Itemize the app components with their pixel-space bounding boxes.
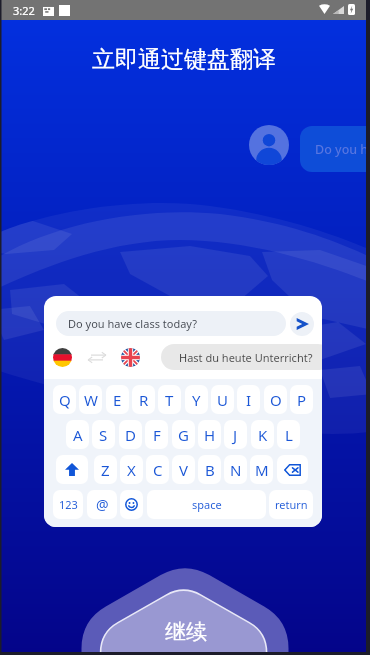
staticText: V [179,460,189,480]
staticText: I [246,390,252,410]
staticText: O [270,390,282,410]
button[interactable]: Shift [56,455,88,484]
button[interactable]: Z [94,455,117,484]
staticText: X [127,460,136,480]
button[interactable]: R [132,385,155,414]
staticText: @ [96,495,109,514]
button[interactable]: P [290,385,313,414]
button[interactable]: English [121,348,140,367]
staticText: return [275,497,308,512]
other: Profile [249,125,289,165]
staticText: M [255,460,269,480]
button[interactable]: Backspace [277,455,308,484]
button[interactable]: @ [87,490,117,519]
staticText: C [153,460,163,480]
staticText: D [125,425,136,445]
staticText: S [99,425,108,445]
button[interactable]: G [172,420,195,449]
button[interactable]: W [79,385,102,414]
button[interactable]: N [224,455,247,484]
staticText: Do you have class today? [68,316,197,331]
staticText: space [192,497,222,512]
button[interactable]: T [158,385,181,414]
staticText: K [258,425,268,445]
staticText: Do you have [315,141,370,158]
button[interactable]: return [269,490,313,519]
button[interactable]: F [145,420,168,449]
staticText: H [204,425,216,445]
button[interactable]: M [250,455,273,484]
staticText: 123 [59,497,78,512]
staticText: Q [59,390,71,410]
button[interactable]: J [224,420,247,449]
button[interactable]: Do you have [300,126,370,172]
staticText: J [233,425,238,445]
staticText: N [230,460,242,480]
staticText: G [178,425,189,445]
button[interactable]: K [251,420,274,449]
button[interactable]: H [198,420,221,449]
button[interactable]: E [106,385,129,414]
staticText: W [84,390,98,410]
staticText: U [217,390,228,410]
button[interactable]: D [119,420,142,449]
button[interactable]: Send [290,312,314,336]
button[interactable]: U [211,385,234,414]
button[interactable]: B [198,455,221,484]
button[interactable]: X [120,455,143,484]
button[interactable]: L [277,420,300,449]
button[interactable]: A [66,420,89,449]
button[interactable]: S [92,420,115,449]
button[interactable]: Do you have class today? [56,311,286,336]
staticText: R [139,390,149,410]
button[interactable]: Hast du heute Unterricht? [161,344,322,370]
button[interactable]: Q [53,385,76,414]
staticText: P [297,390,307,410]
button[interactable]: O [264,385,287,414]
staticText: Y [192,390,201,410]
button[interactable]: 继续 [136,616,236,648]
staticText: B [205,460,215,480]
button[interactable]: space [147,490,266,519]
button[interactable]: I [237,385,260,414]
button[interactable]: Y [185,385,208,414]
button[interactable]: German [53,348,72,367]
button[interactable]: 123 [53,490,83,519]
staticText: E [113,390,122,410]
staticText: Hast du heute Unterricht? [179,350,313,365]
staticText: Z [101,460,110,480]
button[interactable]: V [172,455,195,484]
staticText: T [165,390,174,410]
staticText: L [285,425,293,445]
staticText: A [73,425,83,445]
staticText: 3:22 [13,3,35,18]
staticText: 继续 [165,619,207,645]
staticText: 立即通过键盘翻译 [92,45,276,74]
staticText: F [153,425,161,445]
button[interactable]: C [146,455,169,484]
button[interactable]: Emoji [120,490,143,519]
